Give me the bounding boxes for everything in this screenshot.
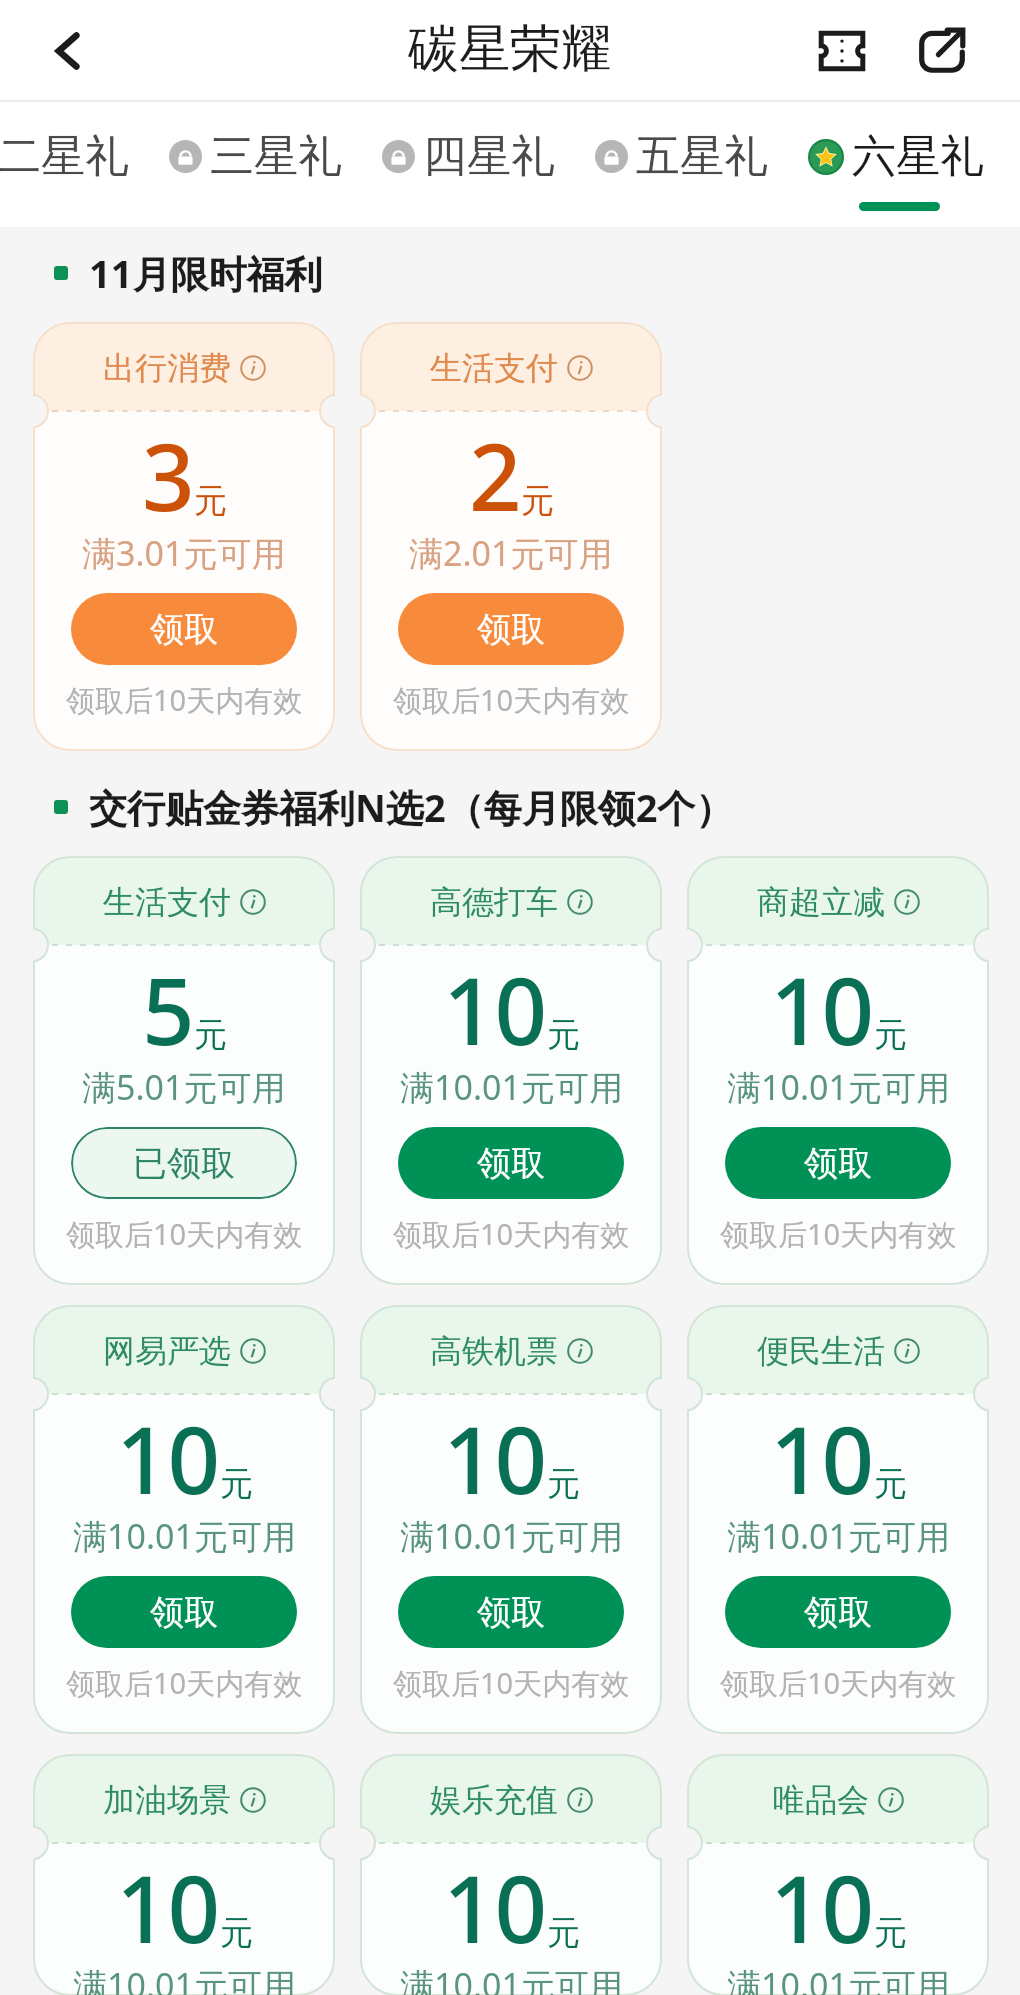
staticText: 满5.01元可用 [82,1064,286,1110]
staticText: 3 [142,413,194,538]
button[interactable]: Back [38,21,98,81]
staticText: 满10.01元可用 [727,1962,950,1995]
staticText: 元 [547,1463,580,1505]
staticText: 领取后10天内有效 [393,680,630,720]
staticText: 二星礼 [0,129,129,184]
staticText: 满2.01元可用 [409,530,613,576]
staticText: 网易严选 [103,1331,231,1371]
button[interactable]: 唯品会 [688,1755,988,1995]
staticText: 10 [770,1845,874,1970]
staticText: 六星礼 [852,129,984,184]
staticText: 高铁机票 [430,1331,558,1371]
staticText: 满10.01元可用 [727,1064,950,1110]
staticText: 元 [874,1014,907,1056]
button[interactable]: 六星礼 [798,102,1014,227]
button[interactable]: 娱乐充值 [361,1755,661,1995]
button[interactable]: 出行消费 [34,323,334,750]
staticText: 碳星荣耀 [408,17,612,81]
staticText: 领取后10天内有效 [393,1214,630,1254]
staticText: 满10.01元可用 [727,1513,950,1559]
staticText: 满10.01元可用 [400,1962,623,1995]
staticText: 领取 [804,1142,872,1185]
staticText: 三星礼 [210,129,342,184]
button[interactable]: 加油场景 [34,1755,334,1995]
staticText: 元 [874,1463,907,1505]
staticText: 满3.01元可用 [82,530,286,576]
button[interactable]: 领取 [71,593,297,665]
button[interactable]: 领取 [398,1576,624,1648]
staticText: 领取 [150,608,218,651]
button[interactable]: 商超立减 [688,857,988,1284]
staticText: 四星礼 [423,129,555,184]
staticText: 元 [194,480,227,522]
button[interactable]: 网易严选 [34,1306,334,1733]
staticText: 领取后10天内有效 [66,1214,303,1254]
staticText: 元 [220,1912,253,1954]
button[interactable]: Share [899,8,985,94]
staticText: 加油场景 [103,1780,231,1820]
button[interactable]: 生活支付 [34,857,334,1284]
staticText: 元 [874,1912,907,1954]
staticText: 满10.01元可用 [400,1064,623,1110]
button[interactable]: 领取 [398,593,624,665]
staticText: 唯品会 [773,1780,869,1820]
staticText: 领取后10天内有效 [720,1214,957,1254]
staticText: 娱乐充值 [430,1780,558,1820]
staticText: 10 [443,947,547,1072]
staticText: 11月限时福利 [89,247,323,299]
staticText: 便民生活 [757,1331,885,1371]
staticText: 元 [521,480,554,522]
staticText: 领取后10天内有效 [66,680,303,720]
staticText: 领取 [477,1142,545,1185]
button[interactable]: 高铁机票 [361,1306,661,1733]
button[interactable]: 四星礼 [372,102,585,227]
staticText: 满10.01元可用 [400,1513,623,1559]
staticText: 10 [116,1845,220,1970]
staticText: 五星礼 [636,129,768,184]
staticText: 领取 [477,608,545,651]
button[interactable]: 领取 [398,1127,624,1199]
staticText: 商超立减 [757,882,885,922]
button[interactable]: 五星礼 [585,102,798,227]
staticText: 10 [116,1396,220,1521]
staticText: 领取 [150,1591,218,1634]
staticText: 满10.01元可用 [73,1513,296,1559]
staticText: 出行消费 [103,348,231,388]
staticText: 10 [443,1845,547,1970]
staticText: 生活支付 [103,882,231,922]
staticText: 5 [142,947,194,1072]
button[interactable]: 高德打车 [361,857,661,1284]
button[interactable]: 已领取 [71,1127,297,1199]
staticText: 满10.01元可用 [73,1962,296,1995]
staticText: 10 [443,1396,547,1521]
staticText: 生活支付 [430,348,558,388]
staticText: 10 [770,1396,874,1521]
staticText: 领取后10天内有效 [393,1663,630,1703]
button[interactable]: 领取 [725,1127,951,1199]
staticText: 元 [547,1912,580,1954]
button[interactable]: 二星礼 [0,102,159,227]
staticText: 领取 [804,1591,872,1634]
button[interactable]: 领取 [71,1576,297,1648]
staticText: 元 [194,1014,227,1056]
staticText: 领取后10天内有效 [720,1663,957,1703]
staticText: 领取 [477,1591,545,1634]
staticText: 10 [770,947,874,1072]
button[interactable]: 生活支付 [361,323,661,750]
staticText: 已领取 [133,1142,235,1185]
button[interactable]: My coupons [799,8,885,94]
button[interactable]: 三星礼 [159,102,372,227]
staticText: 元 [220,1463,253,1505]
staticText: 领取后10天内有效 [66,1663,303,1703]
button[interactable]: 领取 [725,1576,951,1648]
staticText: 元 [547,1014,580,1056]
staticText: 高德打车 [430,882,558,922]
button[interactable]: 便民生活 [688,1306,988,1733]
staticText: 交行贴金券福利N选2（每月限领2个） [89,781,734,833]
staticText: 2 [469,413,521,538]
